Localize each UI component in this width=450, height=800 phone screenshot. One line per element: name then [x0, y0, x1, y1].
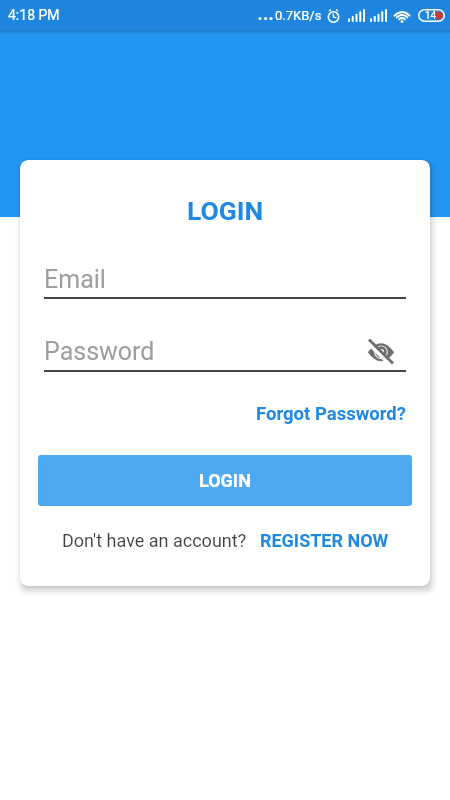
button[interactable]: REGISTER NOW: [260, 530, 389, 551]
button[interactable]: Forgot Password?: [256, 403, 406, 425]
staticText: LOGIN: [187, 195, 264, 226]
staticText: 0.7KB/s: [275, 8, 322, 23]
staticText: Password: [44, 337, 155, 366]
staticText: 14: [425, 10, 437, 22]
staticText: Email: [44, 265, 106, 294]
staticText: 4:18 PM: [8, 7, 60, 23]
button[interactable]: Email: [44, 260, 406, 298]
button[interactable]: Password: [44, 332, 406, 370]
button[interactable]: LOGIN: [38, 455, 412, 506]
button[interactable]: [366, 336, 396, 366]
staticText: LOGIN: [199, 470, 251, 491]
staticText: Don't have an account?: [62, 530, 247, 551]
